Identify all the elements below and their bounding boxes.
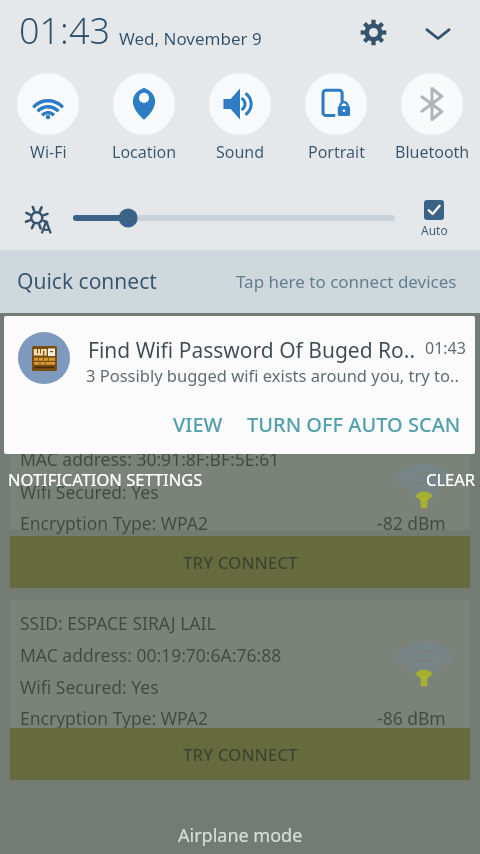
staticText: Find Wifi Password Of Buged Ro.. [88, 336, 416, 365]
button[interactable]: Bluetooth [384, 73, 480, 163]
staticText: Wed, November 9 [119, 27, 262, 50]
staticText: 01:43 [19, 6, 111, 55]
button[interactable]: Wi-Fi [0, 73, 96, 163]
staticText: Portrait [308, 141, 365, 163]
staticText: TURN OFF AUTO SCAN [247, 411, 461, 438]
button[interactable]: Portrait [288, 73, 384, 163]
staticText: -82 dBm [377, 511, 446, 535]
staticText: MAC address: 30:91:8F:BF:5E:61 [20, 447, 280, 471]
staticText: Airplane mode [178, 823, 303, 848]
staticText: 3 Possibly bugged wifi exists around you… [86, 364, 459, 386]
staticText: VIEW [173, 411, 223, 438]
staticText: Sound [216, 141, 265, 163]
button[interactable]: Settings [353, 12, 393, 52]
staticText: Encryption Type: WPA2 [20, 706, 209, 730]
button[interactable]: Quick connect [0, 250, 480, 313]
staticText: Auto [421, 222, 448, 238]
button[interactable]: TURN OFF AUTO SCAN [233, 400, 475, 448]
button[interactable]: Sound [192, 73, 288, 163]
staticText: Wi-Fi [30, 141, 67, 163]
button[interactable]: Auto brightness [424, 200, 444, 220]
staticText: Wifi Secured: Yes [20, 675, 159, 699]
button[interactable]: TRY CONNECT [10, 536, 470, 588]
staticText: Bluetooth [395, 141, 470, 163]
button[interactable]: CLEAR [422, 462, 480, 496]
button[interactable]: NOTIFICATION SETTINGS [0, 462, 207, 496]
staticText: Quick connect [17, 267, 157, 296]
button[interactable]: Brightness slider [64, 206, 404, 230]
button[interactable]: Brightness [25, 206, 53, 234]
staticText: -86 dBm [377, 706, 446, 730]
staticText: Location [112, 141, 177, 163]
staticText: TRY CONNECT [183, 551, 298, 574]
button[interactable]: VIEW [155, 400, 241, 448]
staticText: NOTIFICATION SETTINGS [8, 468, 203, 490]
button[interactable]: Collapse [418, 13, 458, 53]
staticText: TRY CONNECT [183, 743, 298, 766]
staticText: 01:43 [425, 337, 466, 359]
button[interactable]: TRY CONNECT [10, 728, 470, 780]
button[interactable]: Location [96, 73, 192, 163]
staticText: Encryption Type: WPA2 [20, 511, 209, 535]
staticText: Wifi Secured: Yes [20, 480, 159, 504]
staticText: SSID: ESPACE SIRAJ LAIL [20, 611, 216, 635]
staticText: CLEAR [426, 468, 476, 490]
button[interactable]: Find Wifi Password Of Buged Ro.. [4, 316, 475, 454]
staticText: MAC address: 00:19:70:6A:76:88 [20, 643, 282, 667]
staticText: Tap here to connect devices [236, 270, 457, 293]
